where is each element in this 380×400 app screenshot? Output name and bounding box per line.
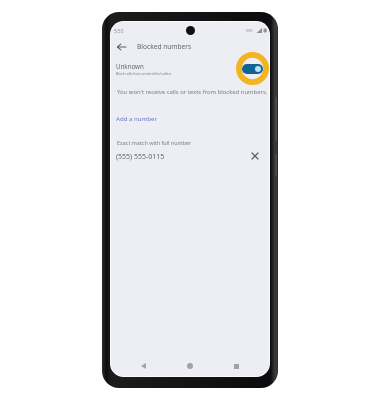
staticText: Add a number — [116, 114, 157, 122]
button[interactable]: Navigate up — [112, 37, 131, 56]
button[interactable]: (555) 555-0115 — [111, 148, 269, 164]
staticText: (555) 555-0115 — [116, 152, 165, 162]
staticText: You won't receive calls or texts from bl… — [117, 88, 268, 96]
button[interactable]: Unknown — [111, 58, 269, 80]
button[interactable]: Block unknown callers toggle — [235, 51, 269, 86]
button[interactable]: Home — [181, 357, 199, 375]
button[interactable]: Recent apps — [227, 357, 245, 375]
staticText: Exact match with full number — [117, 139, 192, 146]
other: Status icons — [244, 28, 265, 33]
button[interactable]: Back — [134, 357, 152, 375]
staticText: Unknown — [116, 62, 144, 70]
button[interactable]: Add a number — [111, 111, 269, 124]
staticText: Block calls from unidentified callers — [116, 71, 172, 76]
staticText: Blocked numbers — [137, 42, 192, 51]
button[interactable]: Remove number — [248, 149, 262, 163]
staticText: 5:53 — [114, 28, 124, 35]
